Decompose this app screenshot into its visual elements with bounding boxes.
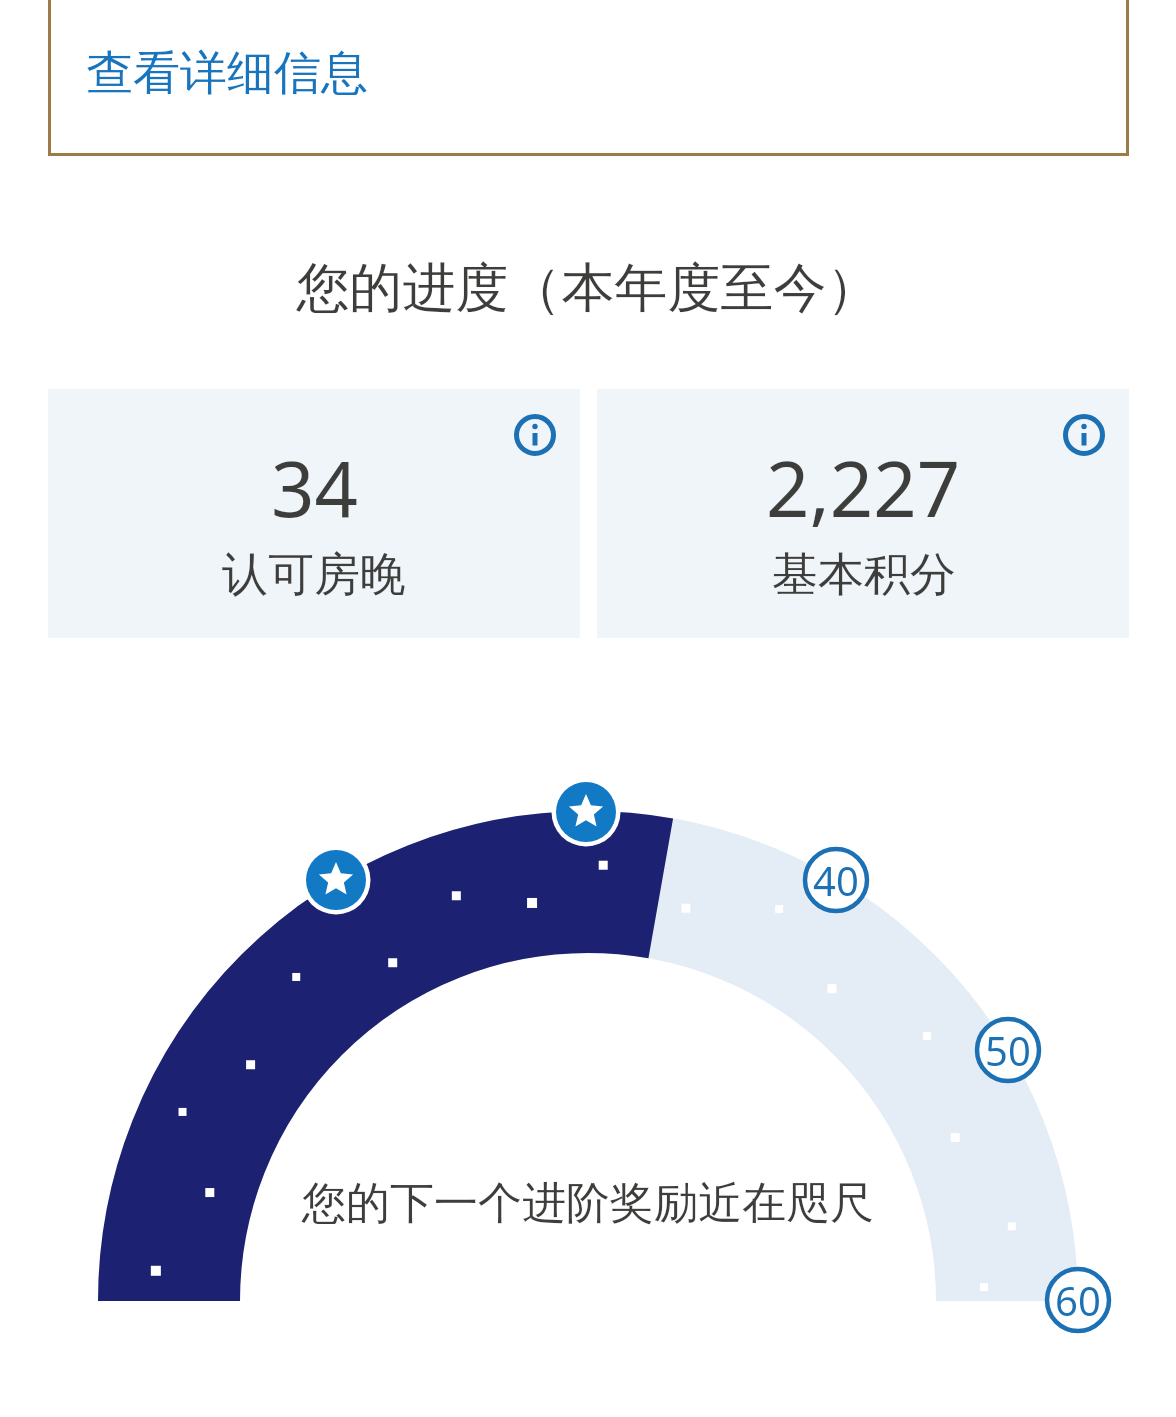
button[interactable]: 2,227 [597,389,1129,638]
staticText: 40 [813,853,859,907]
button[interactable]: Information [514,414,556,456]
button[interactable]: 查看详细信息 [86,44,368,103]
button[interactable]: 34 [48,389,580,638]
staticText: 60 [1055,1273,1101,1327]
staticText: 查看详细信息 [86,44,368,103]
staticText: 您的下一个进阶奖励近在咫尺 [0,1176,1176,1231]
button[interactable]: 60 [1045,1267,1111,1333]
staticText: 您的进度（本年度至今） [0,255,1176,322]
staticText: 基本积分 [772,546,956,604]
button[interactable]: Information [1063,414,1105,456]
staticText: 认可房晚 [222,546,406,604]
staticText: 2,227 [766,436,961,540]
button[interactable]: 40 [803,847,869,913]
staticText: 50 [985,1023,1031,1077]
staticText: 34 [271,436,358,540]
button[interactable]: 50 [975,1017,1041,1083]
